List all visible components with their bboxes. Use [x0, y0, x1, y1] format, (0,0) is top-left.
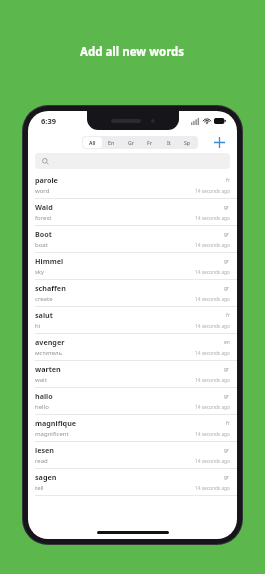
- staticText: En: [108, 139, 115, 146]
- staticText: Fr: [147, 139, 152, 146]
- staticText: 6:39: [41, 116, 56, 126]
- staticText: Himmel: [35, 256, 64, 266]
- staticText: 14 seconds ago: [195, 323, 230, 330]
- button[interactable]: En: [102, 137, 121, 148]
- staticText: мститель: [35, 349, 62, 357]
- staticText: fr: [226, 312, 230, 319]
- staticText: gr: [224, 393, 230, 400]
- staticText: 14 seconds ago: [195, 350, 230, 357]
- staticText: 14 seconds ago: [195, 377, 230, 384]
- staticText: avenger: [35, 337, 65, 347]
- staticText: gr: [224, 204, 230, 211]
- button[interactable]: Sp: [178, 137, 197, 148]
- button[interactable]: lesen: [28, 442, 237, 469]
- staticText: All: [89, 139, 96, 146]
- staticText: warten: [35, 364, 61, 374]
- staticText: gr: [224, 231, 230, 238]
- staticText: sky: [35, 268, 45, 276]
- staticText: gr: [224, 366, 230, 373]
- staticText: 14 seconds ago: [195, 188, 230, 195]
- staticText: Gr: [128, 139, 134, 146]
- button[interactable]: Gr: [121, 137, 140, 148]
- staticText: 14 seconds ago: [195, 296, 230, 303]
- staticText: Sp: [184, 139, 191, 146]
- button[interactable]: It: [159, 137, 178, 148]
- button[interactable]: warten: [28, 361, 237, 388]
- staticText: 14 seconds ago: [195, 215, 230, 222]
- staticText: word: [35, 187, 50, 195]
- button[interactable]: All: [83, 137, 102, 148]
- button[interactable]: Boot: [28, 226, 237, 253]
- staticText: 14 seconds ago: [195, 404, 230, 411]
- staticText: Wald: [35, 202, 53, 212]
- staticText: tell: [35, 484, 44, 492]
- staticText: read: [35, 457, 48, 465]
- staticText: magnificent: [35, 430, 69, 438]
- staticText: hi: [35, 322, 41, 330]
- staticText: fr: [226, 177, 230, 184]
- button[interactable]: schaffen: [28, 280, 237, 307]
- button[interactable]: Fr: [140, 137, 159, 148]
- staticText: boat: [35, 241, 48, 249]
- button[interactable]: Search: [35, 153, 230, 169]
- staticText: create: [35, 295, 53, 303]
- staticText: fr: [226, 420, 230, 427]
- staticText: magnifique: [35, 418, 77, 428]
- staticText: 14 seconds ago: [195, 242, 230, 249]
- staticText: sagen: [35, 472, 57, 482]
- button[interactable]: Wald: [28, 199, 237, 226]
- staticText: lesen: [35, 445, 55, 455]
- button[interactable]: hallo: [28, 388, 237, 415]
- staticText: gr: [224, 285, 230, 292]
- button[interactable]: Add word: [209, 132, 229, 152]
- staticText: 14 seconds ago: [195, 431, 230, 438]
- button[interactable]: magnifique: [28, 415, 237, 442]
- staticText: hello: [35, 403, 49, 411]
- staticText: 14 seconds ago: [195, 269, 230, 276]
- staticText: en: [224, 339, 230, 346]
- staticText: hallo: [35, 391, 53, 401]
- staticText: 14 seconds ago: [195, 458, 230, 465]
- staticText: forest: [35, 214, 52, 222]
- button[interactable]: avenger: [28, 334, 237, 361]
- staticText: Add all new words: [80, 44, 185, 60]
- staticText: gr: [224, 447, 230, 454]
- staticText: gr: [224, 474, 230, 481]
- staticText: wait: [35, 376, 47, 384]
- button[interactable]: sagen: [28, 469, 237, 496]
- staticText: salut: [35, 310, 53, 320]
- button[interactable]: Himmel: [28, 253, 237, 280]
- staticText: parole: [35, 175, 58, 185]
- button[interactable]: salut: [28, 307, 237, 334]
- staticText: schaffen: [35, 283, 66, 293]
- staticText: 14 seconds ago: [195, 485, 230, 492]
- button[interactable]: parole: [28, 172, 237, 199]
- staticText: gr: [224, 258, 230, 265]
- staticText: Boot: [35, 229, 52, 239]
- staticText: It: [167, 139, 171, 146]
